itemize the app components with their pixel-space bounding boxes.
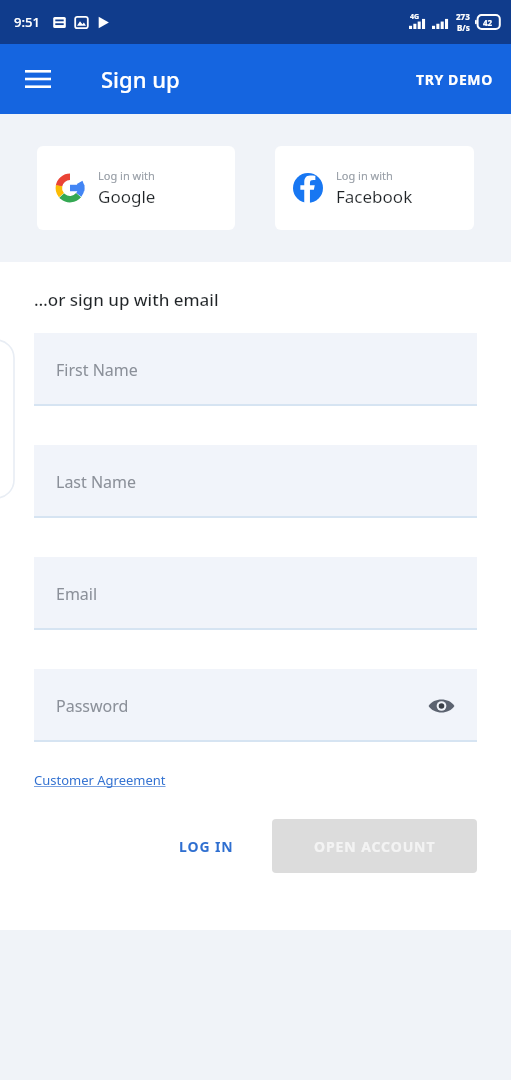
staticText: TRY DEMO	[416, 70, 493, 89]
button[interactable]: Last Name	[34, 445, 477, 518]
staticText: Email	[56, 583, 98, 605]
button[interactable]: OPEN ACCOUNT	[272, 819, 477, 873]
staticText: 273	[456, 11, 470, 22]
staticText: …or sign up with email	[34, 288, 219, 311]
staticText: LOG IN	[179, 837, 234, 856]
staticText: Last Name	[56, 471, 137, 493]
button[interactable]: Log in with Google	[37, 146, 235, 230]
button[interactable]: Email	[34, 557, 477, 630]
button[interactable]: Customer Agreement	[34, 771, 169, 789]
staticText: 42	[483, 17, 493, 28]
button[interactable]: First Name	[34, 333, 477, 406]
button[interactable]: Log in with Facebook	[275, 146, 474, 230]
staticText: Customer Agreement	[34, 771, 169, 789]
staticText: B/s	[457, 22, 470, 33]
staticText: 9:51	[14, 13, 40, 31]
button[interactable]: Open navigation menu	[14, 55, 62, 103]
button[interactable]: TRY DEMO	[404, 58, 505, 101]
staticText: 4G	[410, 12, 420, 22]
staticText: Sign up	[101, 64, 180, 94]
staticText: Log in with	[98, 168, 155, 183]
button[interactable]: LOG IN	[159, 823, 254, 870]
staticText: First Name	[56, 359, 138, 381]
button[interactable]: Show password	[419, 684, 463, 728]
staticText: OPEN ACCOUNT	[314, 837, 436, 856]
staticText: Password	[56, 695, 129, 717]
staticText: Facebook	[336, 185, 413, 208]
staticText: Google	[98, 185, 156, 208]
staticText: Log in with	[336, 168, 393, 183]
button[interactable]: Password	[34, 669, 477, 742]
